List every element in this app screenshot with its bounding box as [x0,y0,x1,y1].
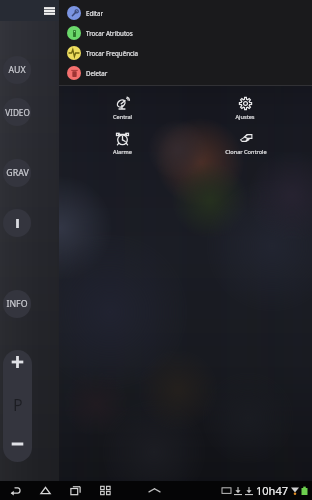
staticText: VIDEO [5,107,30,118]
button[interactable]: Alarme [92,131,152,156]
staticText: Alarme [113,148,132,156]
button[interactable]: Ajustes [215,96,275,121]
button[interactable]: Central [92,96,152,121]
button[interactable]: Recents [60,481,90,500]
staticText: 10h47 [256,483,288,498]
staticText: Editar [86,9,104,17]
button[interactable]: Clonar Controle [216,131,276,156]
staticText: Ajustes [235,113,255,121]
button[interactable]: Menu [40,2,58,20]
button[interactable]: AUX [3,56,31,84]
button[interactable]: Screenshot [90,481,120,500]
staticText: INFO [6,298,28,310]
staticText: Trocar Frequência [86,49,139,57]
button[interactable]: Trocar Atributos [59,23,312,43]
button[interactable]: VIDEO [3,98,31,126]
button[interactable]: Editar [59,3,312,23]
staticText: Trocar Atributos [86,29,133,37]
button[interactable]: Deletar [59,63,312,83]
button[interactable]: GRAV [3,159,31,187]
button[interactable]: Home [30,481,60,500]
button[interactable]: Expand [144,481,164,500]
staticText: Clonar Controle [225,148,267,156]
staticText: GRAV [6,167,29,179]
button[interactable]: INFO [3,290,31,318]
staticText: Central [113,113,132,121]
staticText: Deletar [86,69,108,77]
button[interactable]: Back [0,481,30,500]
staticText: P [13,394,23,416]
button[interactable]: I [3,209,31,237]
button[interactable]: Program [3,350,32,462]
staticText: AUX [8,64,26,76]
button[interactable]: Trocar Frequência [59,43,312,63]
